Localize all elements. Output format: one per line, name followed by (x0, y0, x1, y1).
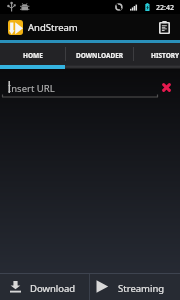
staticText: 22:42 (156, 3, 174, 13)
staticText: Streaming (118, 282, 165, 295)
staticText: DOWNLOADER (76, 51, 124, 60)
staticText: Insert URL (8, 82, 55, 95)
staticText: HISTORY (151, 51, 180, 60)
button[interactable]: Download (0, 274, 90, 300)
button[interactable]: Streaming (90, 274, 180, 300)
button[interactable]: Paste from clipboard (151, 14, 177, 40)
staticText: HOME (23, 51, 43, 60)
button[interactable]: DOWNLOADER (66, 43, 133, 65)
button[interactable]: Clear URL (156, 77, 176, 97)
staticText: AndStream (28, 21, 78, 34)
button[interactable]: Insert URL (0, 69, 180, 101)
button[interactable]: HOME (0, 43, 65, 65)
button[interactable]: HISTORY (131, 43, 180, 65)
staticText: Download (30, 282, 76, 295)
